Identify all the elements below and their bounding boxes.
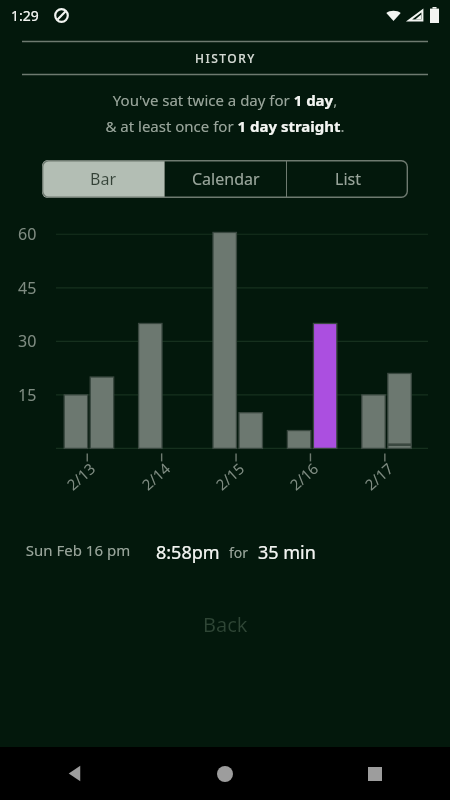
staticText: 15 bbox=[18, 384, 37, 406]
staticText: 60 bbox=[18, 223, 37, 245]
button[interactable]: Back bbox=[203, 611, 248, 638]
staticText: Calendar bbox=[192, 168, 260, 190]
staticText: for bbox=[229, 543, 249, 562]
button[interactable]: Recent apps bbox=[300, 747, 450, 800]
staticText: 8:58pm bbox=[156, 540, 220, 565]
staticText: 2/16 bbox=[285, 458, 323, 494]
staticText: You've sat twice a day for 1 day, & at l… bbox=[105, 90, 345, 137]
button[interactable]: Bar bbox=[42, 160, 164, 198]
other: Do not disturb bbox=[54, 8, 69, 23]
staticText: Sun Feb 16 pm bbox=[22, 540, 134, 560]
button[interactable]: Calendar bbox=[165, 160, 286, 198]
staticText: 2/13 bbox=[62, 458, 100, 494]
staticText: HISTORY bbox=[195, 50, 256, 66]
staticText: 2/15 bbox=[211, 458, 249, 494]
staticText: Bar bbox=[90, 168, 116, 190]
staticText: List bbox=[335, 168, 361, 190]
staticText: Back bbox=[203, 611, 248, 638]
staticText: 1:29 bbox=[11, 6, 39, 25]
staticText: 2/14 bbox=[137, 458, 175, 494]
staticText: 35 min bbox=[258, 540, 316, 565]
staticText: 30 bbox=[18, 330, 37, 352]
button[interactable]: Back bbox=[0, 747, 150, 800]
button[interactable]: List bbox=[287, 160, 408, 198]
staticText: 2/17 bbox=[360, 458, 398, 494]
button[interactable]: Home bbox=[150, 747, 300, 800]
staticText: 45 bbox=[18, 277, 37, 299]
